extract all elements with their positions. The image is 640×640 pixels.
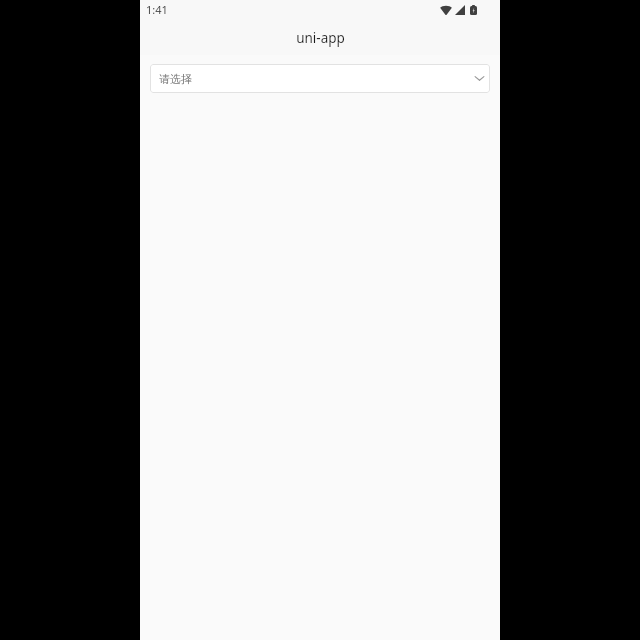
button[interactable]: 请选择 xyxy=(150,64,490,93)
other: Expand xyxy=(474,73,485,84)
staticText: uni-app xyxy=(296,29,345,47)
staticText: 请选择 xyxy=(159,72,192,86)
staticText: 1:41 xyxy=(146,2,168,17)
